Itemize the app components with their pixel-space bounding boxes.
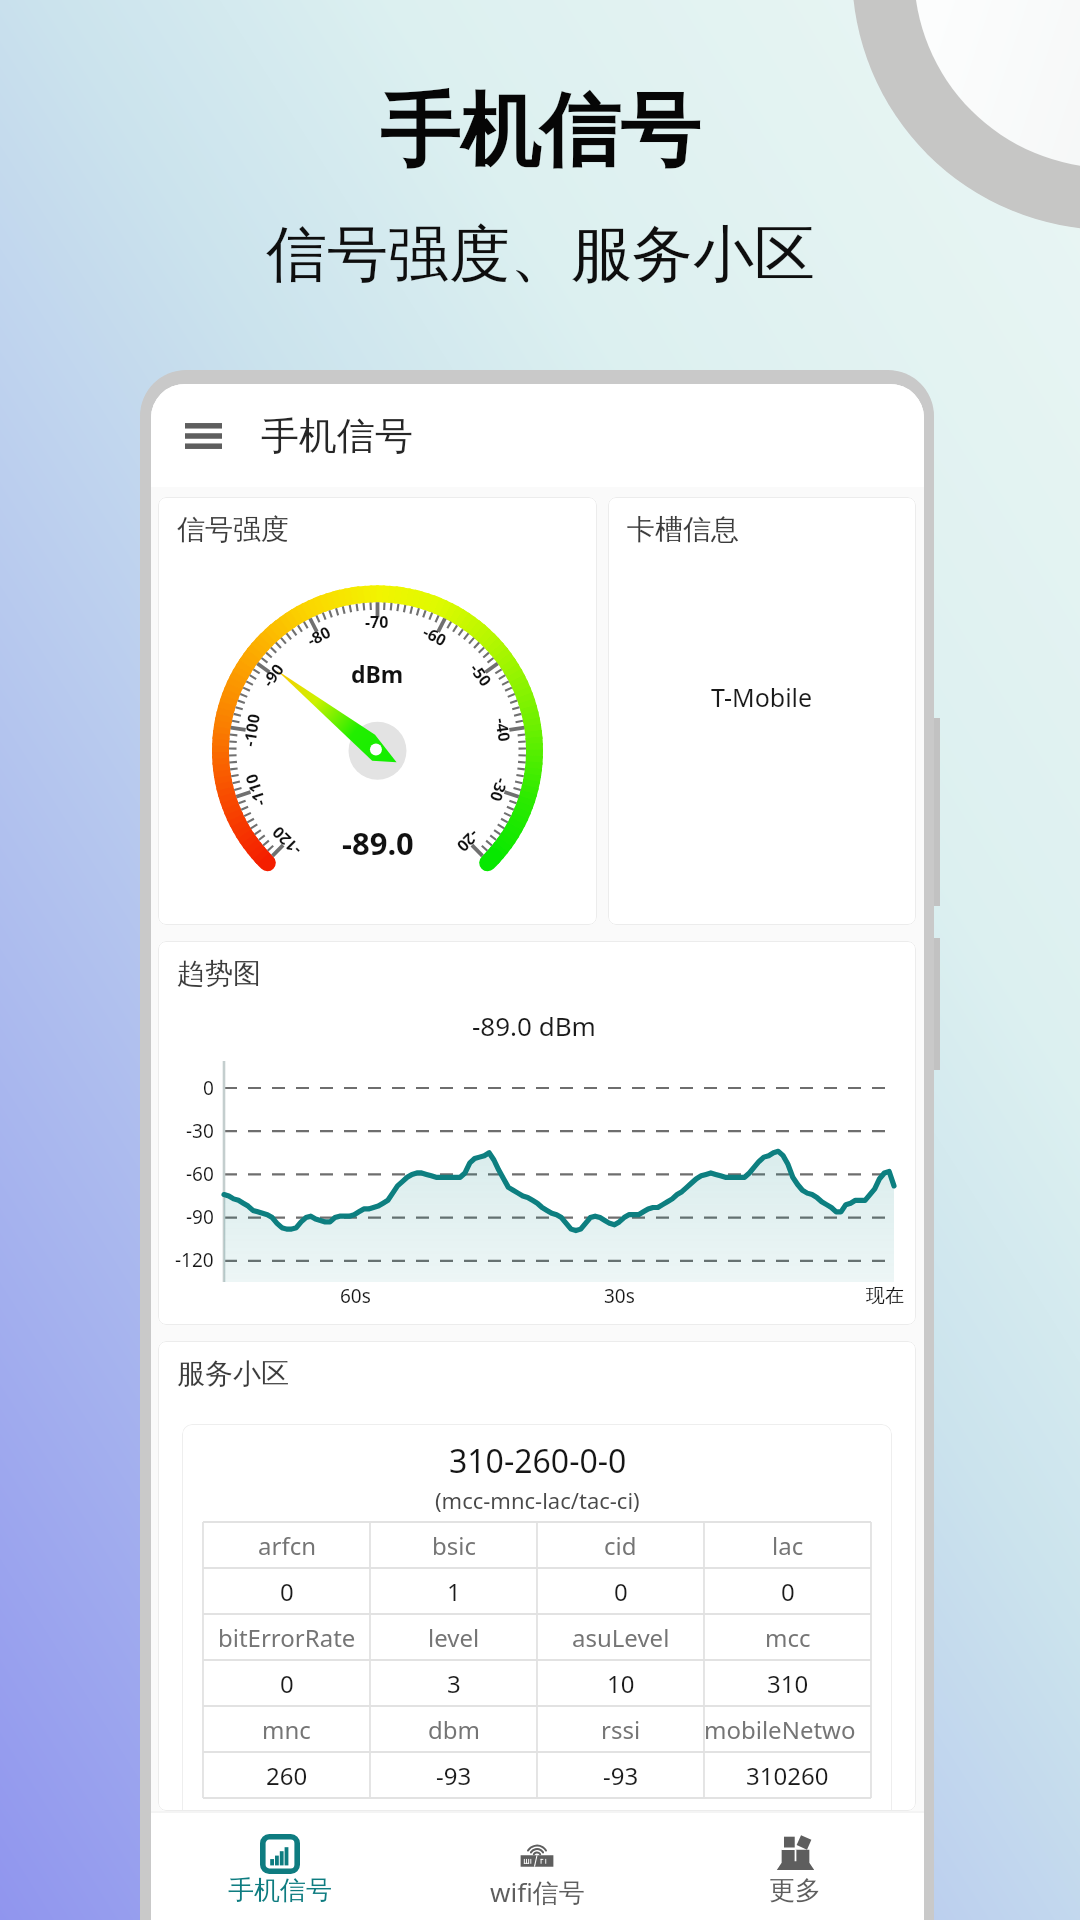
staticText: bitErrorRate — [218, 1621, 356, 1654]
staticText: 0 — [280, 1575, 294, 1608]
staticText: wifi信号 — [490, 1874, 585, 1910]
staticText: mobileNetwo… — [704, 1713, 871, 1746]
staticText: 0 — [280, 1667, 294, 1700]
staticText: -50 — [465, 659, 497, 691]
staticText: 卡槽信息 — [627, 512, 739, 547]
staticText: -93 — [603, 1759, 639, 1792]
staticText: 信号强度 — [177, 512, 289, 547]
staticText: -60 — [419, 621, 451, 651]
staticText: lac — [772, 1529, 804, 1562]
staticText: 3 — [447, 1667, 461, 1700]
staticText: 10 — [607, 1667, 635, 1700]
staticText: -70 — [365, 611, 389, 633]
staticText: (mcc-mnc-lac/tac-ci) — [435, 1485, 640, 1515]
staticText: T-Mobile — [711, 680, 813, 714]
staticText: -90 — [257, 659, 289, 691]
staticText: -89.0 — [342, 822, 414, 864]
staticText: 60s — [340, 1283, 371, 1309]
button[interactable]: Menu — [173, 406, 233, 466]
staticText: -120 — [267, 822, 306, 860]
staticText: -40 — [490, 716, 516, 743]
staticText: 0 — [781, 1575, 795, 1608]
staticText: dbm — [428, 1713, 480, 1746]
button[interactable]: 更多 — [666, 1813, 924, 1920]
staticText: mcc — [765, 1621, 811, 1654]
staticText: -89.0 dBm — [472, 1008, 596, 1043]
staticText: -110 — [240, 771, 271, 809]
staticText: cid — [604, 1529, 637, 1562]
staticText: 手机信号 — [380, 81, 700, 182]
staticText: -20 — [452, 825, 484, 857]
staticText: 1 — [447, 1575, 461, 1608]
staticText: -90 — [186, 1204, 214, 1230]
staticText: -100 — [238, 712, 265, 748]
staticText: 0 — [614, 1575, 628, 1608]
staticText: 现在 — [866, 1284, 904, 1308]
staticText: 信号强度、服务小区 — [266, 216, 815, 293]
button[interactable]: 手机信号 — [151, 1813, 408, 1920]
staticText: rssi — [601, 1713, 641, 1746]
staticText: 30s — [604, 1283, 635, 1309]
staticText: asuLevel — [572, 1621, 670, 1654]
staticText: mnc — [262, 1713, 311, 1746]
staticText: 260 — [266, 1759, 308, 1792]
staticText: -30 — [485, 775, 513, 805]
staticText: 0 — [203, 1075, 214, 1101]
staticText: -80 — [303, 621, 335, 651]
staticText: 手机信号 — [228, 1874, 332, 1907]
button[interactable]: wifi信号 — [408, 1813, 666, 1920]
staticText: 手机信号 — [261, 412, 413, 460]
staticText: 310260 — [746, 1759, 829, 1792]
staticText: dBm — [351, 658, 404, 689]
staticText: 310-260-0-0 — [449, 1439, 627, 1483]
staticText: 服务小区 — [177, 1356, 289, 1391]
staticText: arfcn — [258, 1529, 316, 1562]
staticText: 更多 — [769, 1874, 821, 1907]
staticText: 趋势图 — [177, 956, 261, 991]
staticText: -120 — [175, 1247, 214, 1273]
staticText: -93 — [436, 1759, 472, 1792]
staticText: level — [428, 1621, 480, 1654]
staticText: -60 — [186, 1161, 214, 1187]
staticText: -30 — [186, 1118, 214, 1144]
staticText: 310 — [767, 1667, 809, 1700]
staticText: bsic — [432, 1529, 476, 1562]
